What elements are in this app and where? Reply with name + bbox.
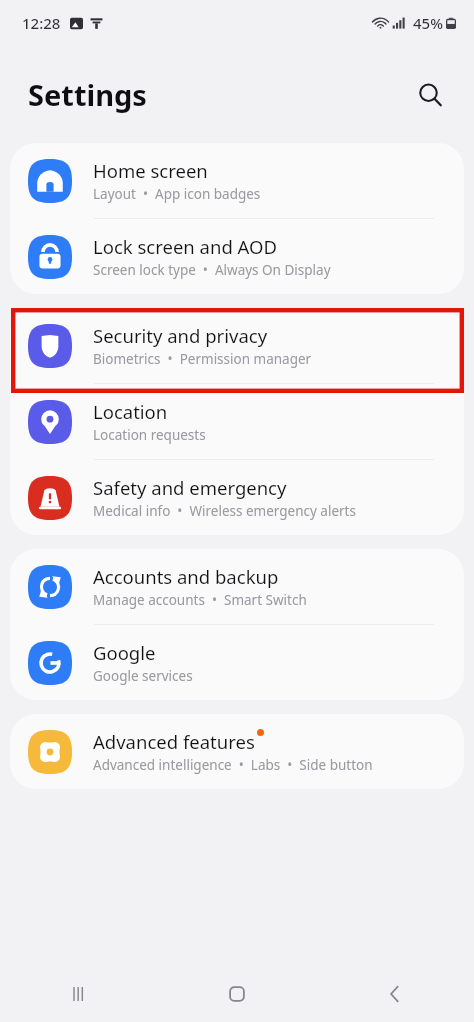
button[interactable]: Location (10, 384, 464, 459)
staticText: Advanced features (93, 729, 255, 754)
button[interactable]: Security and privacy (10, 308, 464, 383)
staticText: Location (93, 399, 168, 424)
button[interactable]: Safety and emergency (10, 460, 464, 535)
button[interactable]: Home screen (10, 143, 464, 218)
staticText: Settings (28, 75, 147, 114)
staticText: 12:28 (22, 13, 61, 33)
button[interactable]: Search (408, 73, 452, 117)
button[interactable]: Advanced features (10, 714, 464, 789)
staticText: Home screen (93, 158, 208, 183)
button[interactable]: Lock screen and AOD (10, 219, 464, 294)
staticText: Lock screen and AOD (93, 234, 277, 259)
staticText: Google (93, 640, 156, 665)
button[interactable]: Recent apps (0, 966, 158, 1022)
button[interactable]: Home (158, 966, 316, 1022)
staticText: Safety and emergency (93, 475, 287, 500)
button[interactable]: Back (316, 966, 474, 1022)
staticText: Layout • App icon badges (93, 185, 261, 203)
staticText: Biometrics • Permission manager (93, 350, 312, 368)
staticText: Manage accounts • Smart Switch (93, 591, 307, 609)
button[interactable]: Accounts and backup (10, 549, 464, 624)
staticText: Medical info • Wireless emergency alerts (93, 502, 356, 520)
button[interactable]: Google (10, 625, 464, 700)
staticText: Advanced intelligence • Labs • Side butt… (93, 756, 373, 774)
staticText: Accounts and backup (93, 564, 279, 589)
staticText: Location requests (93, 426, 206, 444)
staticText: Security and privacy (93, 323, 268, 348)
staticText: 45% (413, 13, 443, 33)
staticText: Google services (93, 667, 193, 685)
staticText: Screen lock type • Always On Display (93, 261, 331, 279)
